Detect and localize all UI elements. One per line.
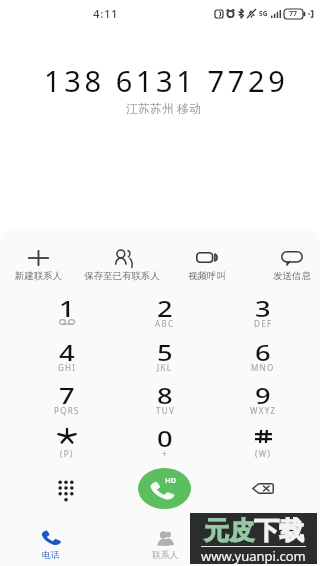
staticText: 发送信息 xyxy=(273,270,311,282)
staticText: 5G xyxy=(259,9,268,18)
staticText: PQRS xyxy=(54,405,80,416)
staticText: 视频呼叫 xyxy=(188,270,226,282)
staticText: 77 xyxy=(289,9,298,19)
staticText: 9 xyxy=(255,382,272,405)
button[interactable]: 0 xyxy=(121,425,209,465)
button[interactable]: Keypad xyxy=(44,466,88,510)
button[interactable]: 9 xyxy=(219,382,307,422)
staticText: 保存至已有联系人 xyxy=(84,270,160,282)
staticText: (W) xyxy=(255,448,272,459)
staticText: GHI xyxy=(58,362,77,373)
button[interactable]: Call xyxy=(138,468,191,509)
button[interactable]: Delete xyxy=(241,466,285,510)
staticText: 3 xyxy=(255,295,272,318)
staticText: ABC xyxy=(155,318,175,329)
button[interactable]: 视频呼叫 xyxy=(165,247,249,285)
button[interactable]: 保存至已有联系人 xyxy=(80,247,164,285)
staticText: 5 xyxy=(157,339,174,362)
staticText: 元皮 xyxy=(204,515,254,546)
button[interactable]: 1 xyxy=(23,295,111,335)
staticText: (P) xyxy=(60,448,74,459)
staticText: 新建联系人 xyxy=(15,270,62,282)
staticText: 0 xyxy=(157,425,174,448)
staticText: WXYZ xyxy=(250,405,277,416)
button[interactable]: (W) xyxy=(219,425,307,465)
staticText: 电话 xyxy=(42,550,60,561)
staticText: 1 xyxy=(59,295,76,318)
staticText: HD xyxy=(165,475,177,485)
staticText: + xyxy=(162,448,168,459)
staticText: 138 6131 7729 xyxy=(44,61,289,100)
staticText: 7 xyxy=(59,382,76,405)
button[interactable]: 6 xyxy=(219,339,307,379)
button[interactable]: 发送信息 xyxy=(250,247,320,285)
staticText: MNO xyxy=(251,362,275,373)
button[interactable]: 5 xyxy=(121,339,209,379)
button[interactable]: 2 xyxy=(121,295,209,335)
staticText: www.yuanpi.com xyxy=(201,547,306,565)
staticText: 联系人 xyxy=(152,550,179,561)
staticText: JKL xyxy=(157,362,173,373)
button[interactable]: 新建联系人 xyxy=(0,247,80,285)
staticText: 2 xyxy=(157,295,174,318)
staticText: 下载 xyxy=(254,515,304,546)
button[interactable]: 联系人 xyxy=(125,529,205,563)
staticText: 4 xyxy=(59,339,76,362)
button[interactable]: 电话 xyxy=(11,529,91,563)
staticText: DEF xyxy=(254,318,273,329)
staticText: 6 xyxy=(255,339,272,362)
button[interactable]: 8 xyxy=(121,382,209,422)
staticText: 4:11 xyxy=(93,6,119,20)
button[interactable]: 7 xyxy=(23,382,111,422)
button[interactable]: (P) xyxy=(23,425,111,465)
staticText: 8 xyxy=(157,382,174,405)
staticText: TUV xyxy=(156,405,175,416)
button[interactable]: 3 xyxy=(219,295,307,335)
staticText: 江苏苏州 移动 xyxy=(126,100,202,114)
button[interactable]: 4 xyxy=(23,339,111,379)
